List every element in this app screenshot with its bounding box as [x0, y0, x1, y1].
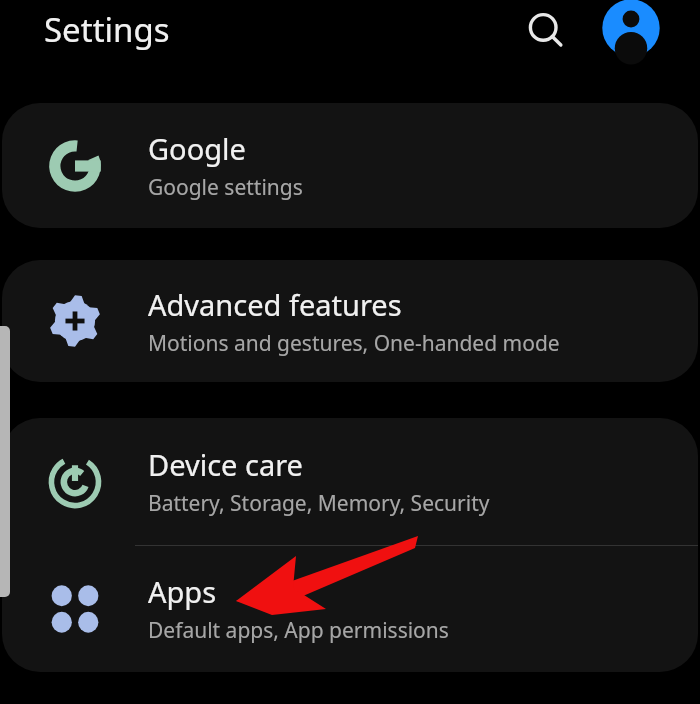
staticText: Apps — [148, 572, 217, 611]
button[interactable]: Search — [515, 0, 577, 62]
button[interactable]: Account — [600, 0, 662, 59]
button[interactable]: Apps — [2, 545, 698, 672]
staticText: Device care — [148, 445, 303, 484]
button[interactable]: Google — [2, 103, 698, 228]
staticText: Battery, Storage, Memory, Security — [148, 489, 490, 518]
button[interactable]: Device care — [2, 418, 698, 545]
button[interactable]: Advanced features — [2, 260, 698, 382]
staticText: Default apps, App permissions — [148, 616, 449, 645]
staticText: Google — [148, 129, 246, 168]
staticText: Advanced features — [148, 285, 402, 324]
staticText: Motions and gestures, One-handed mode — [148, 329, 560, 358]
staticText: Google settings — [148, 173, 303, 202]
staticText: Settings — [44, 7, 170, 52]
